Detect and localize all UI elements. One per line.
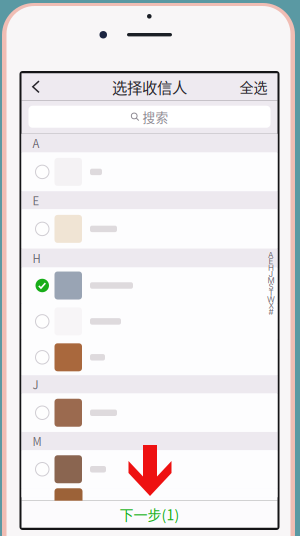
staticText: E xyxy=(268,257,273,266)
staticText: W xyxy=(267,294,275,304)
button[interactable]: 全选 xyxy=(239,73,277,101)
staticText: S xyxy=(268,282,273,291)
staticText: 全选 xyxy=(239,77,267,97)
staticText: J xyxy=(32,376,38,393)
staticText: A xyxy=(32,135,39,151)
staticText: 搜索 xyxy=(142,108,168,126)
button[interactable]: 下一步(1) xyxy=(21,501,277,528)
staticText: X xyxy=(268,301,273,310)
staticText: # xyxy=(268,307,273,317)
staticText: J xyxy=(268,269,273,279)
button[interactable]: Contact xyxy=(21,268,277,303)
staticText: M xyxy=(267,275,274,285)
staticText: H xyxy=(268,263,274,273)
button[interactable]: Contact xyxy=(21,209,277,248)
button[interactable]: Contact xyxy=(21,339,277,375)
button[interactable]: Contact xyxy=(21,394,277,432)
button[interactable]: Back xyxy=(21,73,50,101)
staticText: A xyxy=(268,250,274,260)
button[interactable]: Contact xyxy=(21,450,277,488)
staticText: 下一步(1) xyxy=(119,504,179,524)
staticText: E xyxy=(32,192,39,208)
staticText: H xyxy=(32,250,40,266)
button[interactable]: Section index xyxy=(265,252,276,315)
button[interactable]: Contact xyxy=(21,153,277,191)
staticText: 选择收信人 xyxy=(112,76,187,98)
staticText: T xyxy=(268,288,273,298)
staticText: M xyxy=(32,433,41,449)
button[interactable]: Contact xyxy=(21,303,277,339)
